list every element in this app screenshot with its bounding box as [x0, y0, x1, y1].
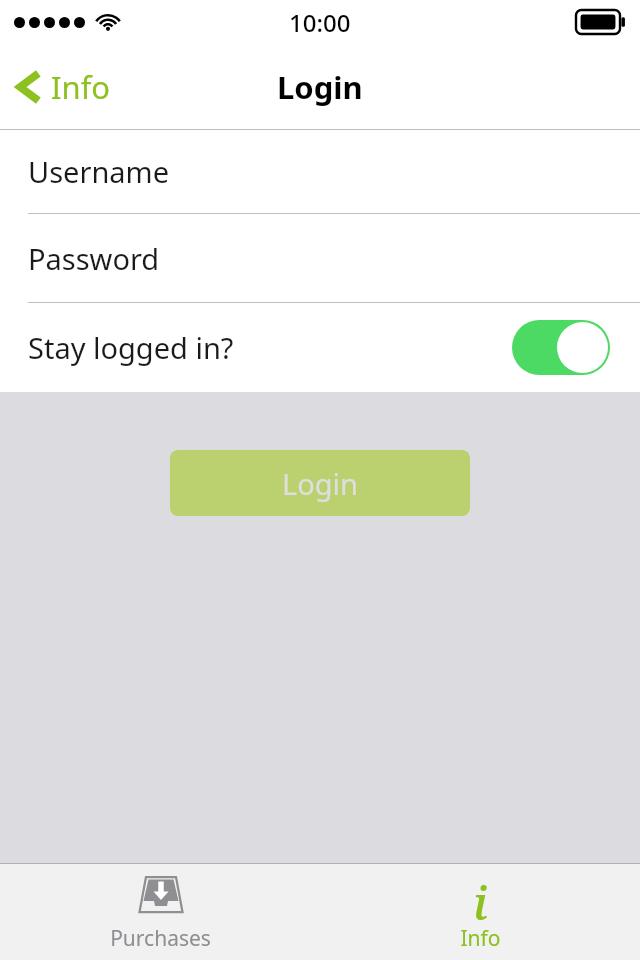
button[interactable]: Stay logged in toggle	[512, 320, 610, 375]
button[interactable]: i	[320, 864, 640, 960]
staticText: 10:00	[289, 6, 351, 39]
staticText: Login	[277, 66, 363, 108]
button[interactable]: Login	[170, 450, 470, 516]
staticText: i	[473, 871, 488, 921]
staticText: Purchases	[110, 924, 211, 953]
staticText: Username	[28, 152, 170, 191]
staticText: Info	[51, 66, 111, 108]
button[interactable]: Info	[0, 44, 127, 130]
staticText: Password	[28, 239, 160, 278]
staticText: Stay logged in?	[28, 328, 234, 367]
button[interactable]: Stay logged in?	[0, 303, 640, 392]
button[interactable]: Username	[0, 130, 640, 213]
button[interactable]: Password	[0, 214, 640, 302]
staticText: Info	[460, 924, 501, 953]
staticText: Login	[282, 464, 358, 503]
button[interactable]: Purchases	[0, 864, 320, 960]
